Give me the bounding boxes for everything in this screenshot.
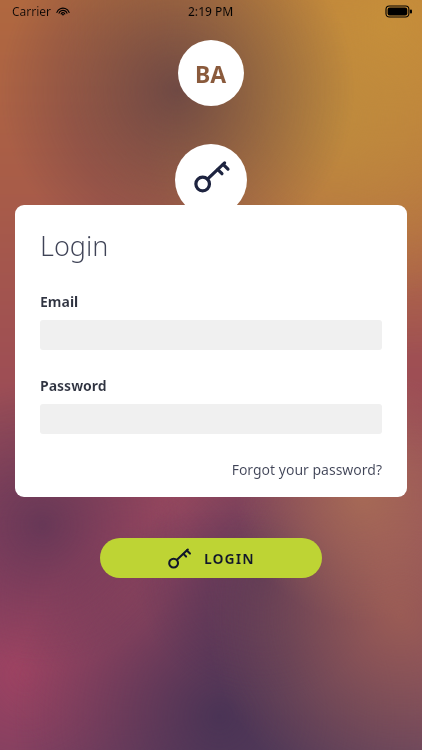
staticText: Login [40,227,109,264]
staticText: Carrier [12,3,52,19]
staticText: BA [195,58,227,89]
button[interactable]: Forgot your password? [231,456,382,483]
staticText: 2:19 PM [188,3,234,19]
staticText: Email [40,292,79,311]
staticText: Password [40,376,107,395]
button[interactable]: LOGIN [100,538,322,578]
staticText: LOGIN [204,549,255,568]
